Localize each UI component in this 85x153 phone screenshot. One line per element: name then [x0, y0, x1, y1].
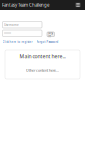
staticText: Other content here...	[26, 68, 59, 73]
button[interactable]: Log in	[47, 32, 54, 37]
staticText: Username	[4, 23, 19, 27]
button[interactable]: Click here to register	[2, 39, 34, 44]
staticText: •••••••	[4, 31, 11, 35]
staticText: Forgot Password	[36, 40, 58, 44]
staticText: Fantasy Team Challenge	[2, 2, 49, 8]
staticText: Log in	[48, 31, 53, 38]
button[interactable]: Forgot Password	[36, 39, 61, 44]
staticText: Click here to register	[2, 40, 32, 44]
staticText: Main content here...	[19, 53, 65, 60]
button[interactable]: Menu	[75, 3, 81, 7]
